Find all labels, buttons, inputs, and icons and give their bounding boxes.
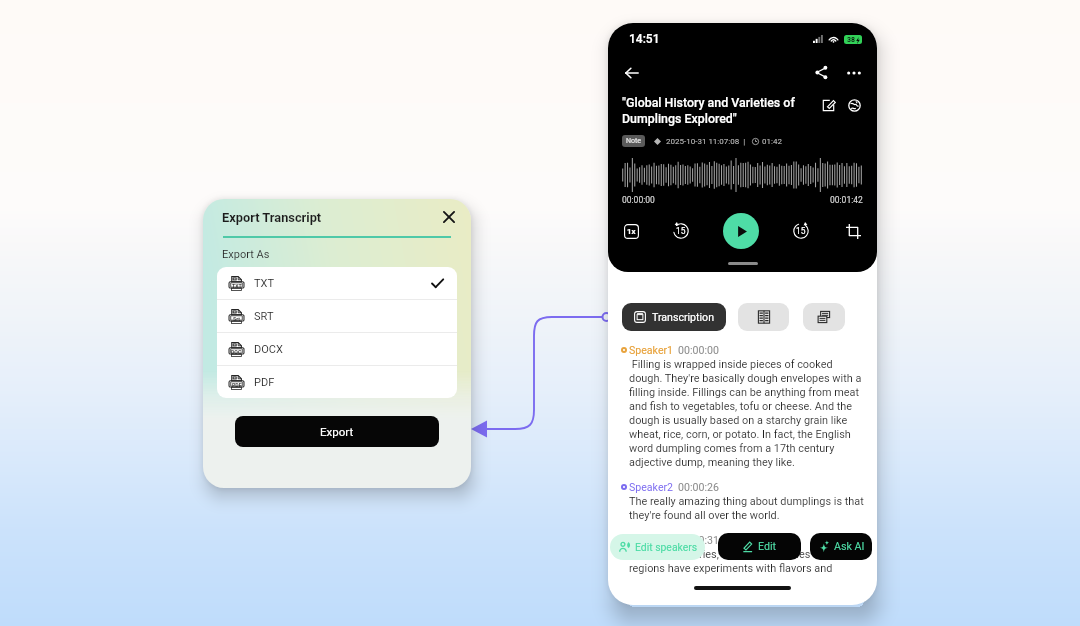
staticText: PDF: [232, 382, 242, 388]
staticText: Filling is wrapped inside pieces of cook…: [629, 358, 865, 469]
staticText: 00:00:26: [678, 481, 719, 493]
button[interactable]: Rewind 15 seconds: [670, 220, 692, 242]
staticText: Transcription: [652, 311, 714, 323]
staticText: Over the centuries, different countries …: [629, 548, 865, 575]
staticText: 00:00:00: [622, 195, 655, 205]
staticText: Speaker3: [629, 534, 674, 546]
button[interactable]: Forward 15 seconds: [790, 220, 812, 242]
staticText: "Global History and Varieties of Dumplin…: [622, 95, 810, 126]
button[interactable]: Playback speed: [624, 224, 639, 239]
button[interactable]: Edit title: [818, 95, 838, 115]
button[interactable]: Transcription: [622, 303, 726, 331]
staticText: SRT: [254, 310, 274, 323]
staticText: Edit speakers: [635, 541, 698, 553]
staticText: 1x: [627, 227, 636, 236]
staticText: TXT: [254, 277, 275, 290]
button[interactable]: Crop audio: [843, 221, 863, 241]
staticText: 00:00:31: [678, 534, 719, 546]
button[interactable]: DOC: [217, 333, 457, 365]
staticText: Edit: [758, 540, 777, 553]
staticText: 00:00:00: [678, 344, 719, 356]
button[interactable]: Back: [620, 61, 643, 84]
button[interactable]: Notes: [738, 303, 789, 331]
button[interactable]: Translate: [844, 95, 864, 115]
button[interactable]: Share: [810, 61, 833, 84]
staticText: Speaker1: [629, 344, 674, 356]
staticText: 15: [676, 226, 686, 236]
staticText: TXT: [232, 283, 242, 289]
staticText: Srt: [233, 316, 240, 322]
button[interactable]: Close: [438, 206, 460, 228]
button[interactable]: TXT: [217, 267, 457, 299]
staticText: Export: [320, 425, 354, 438]
staticText: 00:01:42: [830, 195, 863, 205]
staticText: Export Transcript: [222, 210, 322, 225]
button[interactable]: Summary: [803, 303, 845, 331]
button[interactable]: Edit: [718, 533, 801, 560]
button[interactable]: Export: [235, 416, 439, 447]
staticText: Ask AI: [834, 540, 865, 553]
button[interactable]: Srt: [217, 300, 457, 332]
staticText: 38: [847, 36, 856, 44]
staticText: 14:51: [629, 32, 660, 46]
staticText: 01:42: [762, 137, 782, 146]
staticText: Speaker2: [629, 481, 674, 493]
staticText: 2025-10-31 11:07:08 |: [666, 137, 746, 146]
staticText: 15: [796, 226, 806, 236]
button[interactable]: More options: [842, 61, 865, 84]
staticText: Export As: [222, 248, 270, 261]
button[interactable]: Play: [723, 213, 759, 249]
button[interactable]: Ask AI: [810, 533, 872, 560]
staticText: PDF: [254, 376, 275, 389]
staticText: Note: [626, 137, 641, 145]
button[interactable]: Edit speakers: [610, 534, 705, 560]
staticText: DOCX: [254, 343, 283, 356]
button[interactable]: PDF: [217, 366, 457, 398]
staticText: DOC: [231, 349, 242, 355]
staticText: The really amazing thing about dumplings…: [629, 495, 865, 522]
